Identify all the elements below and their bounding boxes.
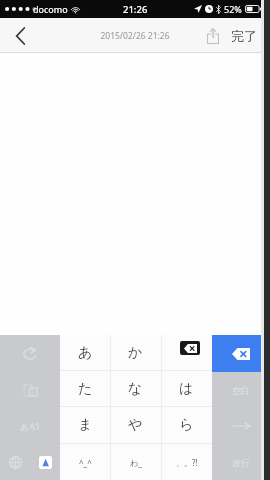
- button[interactable]: Share: [197, 18, 229, 53]
- button[interactable]: 空白: [212, 372, 270, 408]
- staticText: あA1: [20, 420, 41, 432]
- button[interactable]: ま: [60, 407, 110, 443]
- staticText: ^_^: [79, 457, 92, 468]
- staticText: か: [128, 344, 143, 362]
- staticText: 完了: [231, 28, 257, 44]
- button[interactable]: 改行: [212, 444, 270, 480]
- staticText: あ: [78, 344, 93, 362]
- button[interactable]: Back: [0, 18, 40, 53]
- button[interactable]: か: [110, 335, 161, 370]
- staticText: 52%: [224, 3, 242, 15]
- button[interactable]: Switch keyboard: [0, 444, 30, 480]
- staticText: わ_: [130, 457, 142, 468]
- staticText: ま: [78, 416, 93, 434]
- button[interactable]: [161, 335, 212, 370]
- button[interactable]: Delete: [212, 335, 270, 372]
- button[interactable]: Next: [212, 408, 270, 444]
- staticText: た: [78, 380, 93, 398]
- staticText: な: [128, 380, 143, 398]
- button[interactable]: ^_^: [60, 444, 110, 480]
- staticText: docomo: [33, 3, 68, 15]
- staticText: ら: [179, 416, 194, 434]
- staticText: は: [179, 380, 194, 398]
- button[interactable]: 完了: [231, 18, 257, 53]
- button[interactable]: わ_: [110, 444, 161, 480]
- button[interactable]: は: [161, 371, 212, 406]
- staticText: 改行: [232, 457, 250, 468]
- button[interactable]: あ: [60, 335, 110, 370]
- button[interactable]: な: [110, 371, 161, 406]
- button[interactable]: ら: [161, 407, 212, 443]
- staticText: や: [128, 416, 143, 434]
- staticText: 2015/02/26 21:26: [100, 30, 170, 42]
- staticText: 21:26: [123, 3, 148, 16]
- button[interactable]: や: [110, 407, 161, 443]
- button[interactable]: ATOK: [30, 444, 60, 480]
- staticText: 、。?!: [176, 457, 198, 468]
- button[interactable]: た: [60, 371, 110, 406]
- button[interactable]: 、。?!: [161, 444, 212, 480]
- staticText: 空白: [232, 385, 250, 396]
